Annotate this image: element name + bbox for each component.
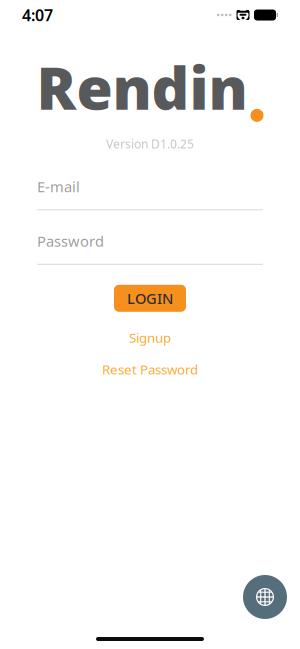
staticText: Version D1.0.25 [106, 136, 194, 152]
button[interactable]: Signup [115, 326, 185, 349]
button[interactable]: Change language [243, 575, 287, 619]
staticText: LOGIN [127, 289, 173, 308]
staticText: Signup [129, 329, 171, 346]
staticText: Rendin [36, 48, 247, 126]
button[interactable]: LOGIN [114, 285, 186, 312]
staticText: Password [37, 231, 104, 251]
staticText: E-mail [37, 177, 80, 196]
staticText: Reset Password [102, 360, 198, 378]
button[interactable]: Reset Password [88, 357, 212, 381]
staticText: 4:07 [22, 4, 53, 26]
